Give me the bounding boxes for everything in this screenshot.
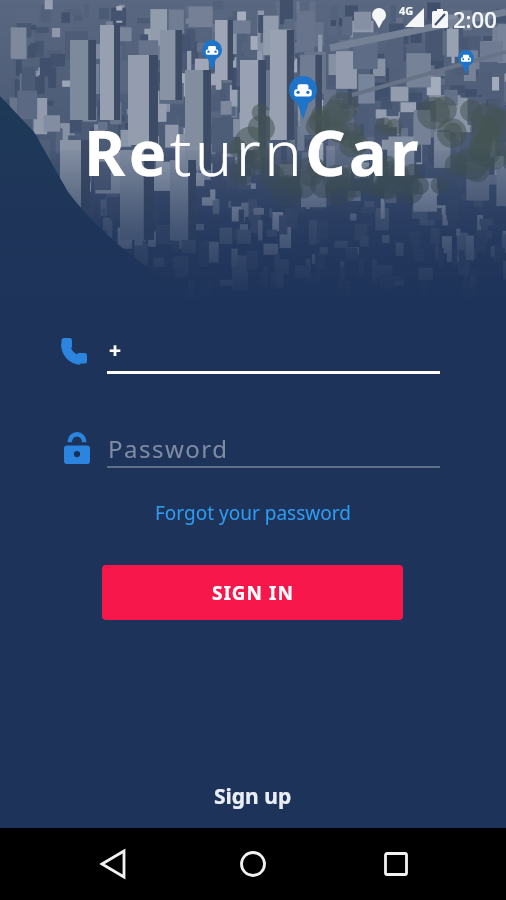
staticText: Forgot your password	[155, 500, 351, 526]
button[interactable]	[89, 840, 137, 888]
staticText: +	[109, 336, 122, 365]
staticText: SIGN IN	[212, 580, 294, 606]
staticText: Sign up	[214, 782, 292, 811]
button[interactable]: SIGN IN	[102, 565, 403, 620]
staticText: ReturnCar	[0, 109, 506, 195]
staticText: 4G	[399, 3, 414, 18]
button[interactable]: Sign up	[208, 776, 298, 817]
staticText: 2:00	[453, 4, 497, 34]
staticText: Password	[108, 432, 229, 465]
button[interactable]: +	[55, 330, 445, 380]
button[interactable]	[229, 840, 277, 888]
button[interactable]	[372, 840, 420, 888]
button[interactable]: Password	[55, 428, 445, 473]
button[interactable]: Forgot your password	[149, 494, 357, 532]
